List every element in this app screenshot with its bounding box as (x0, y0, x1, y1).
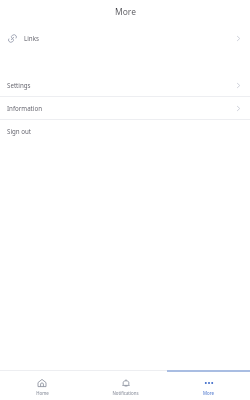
staticText: Links (24, 34, 39, 42)
staticText: Sign out (7, 127, 32, 135)
button[interactable]: Settings (0, 74, 250, 96)
button[interactable]: More (167, 370, 250, 400)
button[interactable]: Links (0, 27, 250, 49)
button[interactable]: Home (0, 370, 84, 400)
button[interactable]: Information (0, 97, 250, 119)
staticText: Settings (7, 81, 31, 89)
button[interactable]: Notifications (84, 370, 167, 400)
staticText: Information (7, 104, 43, 112)
staticText: Home (36, 390, 49, 396)
button[interactable]: Sign out (0, 120, 250, 142)
staticText: More (115, 6, 136, 18)
staticText: More (203, 390, 214, 396)
staticText: Notifications (112, 390, 139, 396)
